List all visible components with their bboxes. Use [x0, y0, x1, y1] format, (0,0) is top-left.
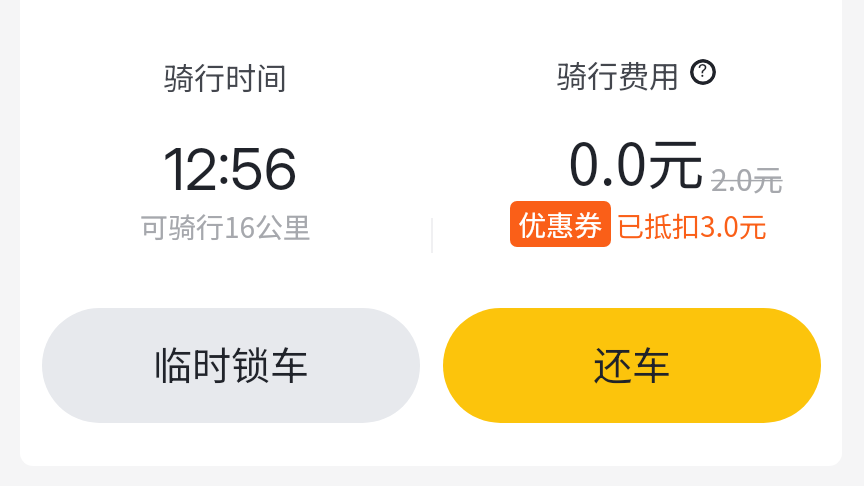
button[interactable]: 临时锁车	[42, 308, 420, 423]
staticText: 已抵扣3.0元	[616, 205, 767, 246]
staticText: 0.0元	[568, 119, 705, 202]
staticText: 骑行时间	[163, 54, 287, 99]
staticText: 可骑行16公里	[140, 206, 312, 247]
staticText: 2.0元	[711, 156, 783, 199]
staticText: 临时锁车	[153, 335, 310, 391]
button[interactable]: 还车	[443, 308, 821, 423]
staticText: 还车	[593, 335, 672, 391]
staticText: 骑行费用	[556, 52, 680, 97]
staticText: 优惠券	[518, 204, 603, 245]
button[interactable]: 骑行费用说明	[690, 59, 716, 85]
staticText: ?	[698, 61, 708, 82]
staticText: 12:56	[164, 134, 298, 204]
button[interactable]: 优惠券	[510, 201, 767, 247]
